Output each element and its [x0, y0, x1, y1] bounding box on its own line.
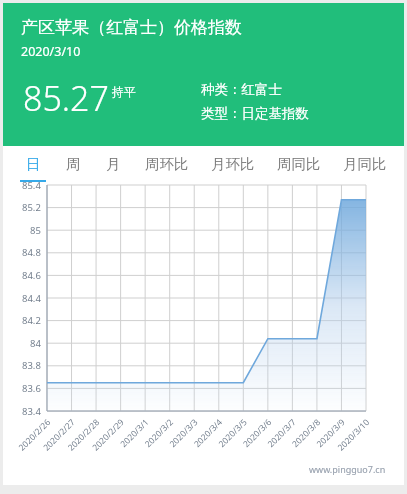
staticText: 周同比 — [277, 155, 321, 173]
staticText: 持平 — [112, 84, 136, 99]
staticText: 类型：日定基指数 — [201, 105, 309, 122]
button[interactable]: 周环比 — [134, 146, 200, 182]
staticText: 日 — [26, 155, 41, 173]
button[interactable]: 周同比 — [266, 146, 332, 182]
staticText: 2020/3/10 — [21, 43, 81, 60]
button[interactable]: 月 — [93, 146, 134, 182]
staticText: 种类：红富士 — [201, 81, 282, 98]
staticText: 月 — [106, 155, 121, 173]
staticText: 月环比 — [211, 155, 255, 173]
button[interactable]: 周 — [53, 146, 93, 182]
staticText: 85.27 — [23, 75, 109, 121]
button[interactable]: 月环比 — [200, 146, 266, 182]
staticText: 周 — [66, 155, 81, 173]
staticText: 周环比 — [145, 155, 189, 173]
staticText: 产区苹果（红富士）价格指数 — [21, 17, 242, 38]
button[interactable]: 月同比 — [332, 146, 398, 182]
staticText: 月同比 — [343, 155, 387, 173]
button[interactable]: 日 — [13, 146, 53, 182]
